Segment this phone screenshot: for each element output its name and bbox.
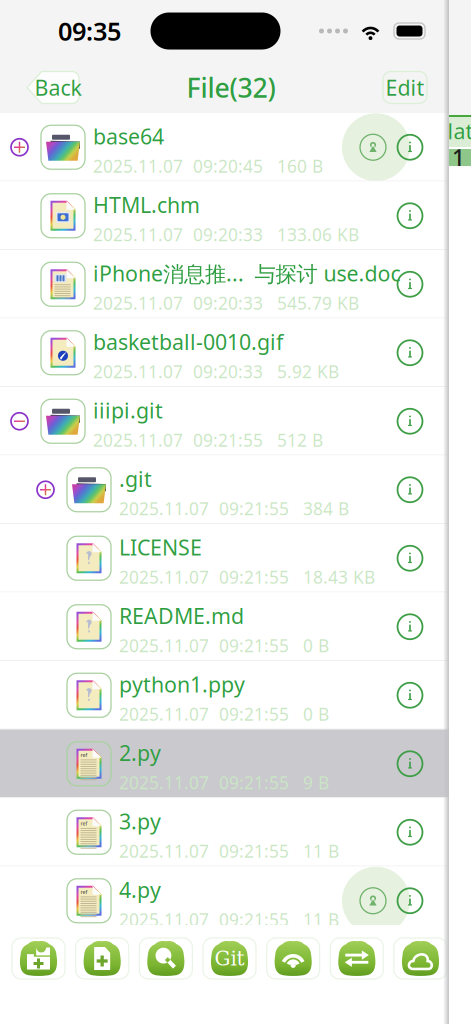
button[interactable]: Info (388, 254, 432, 314)
staticText: basketball-0010.gif (93, 328, 283, 356)
staticText: ref (80, 888, 87, 895)
staticText: 11 B (303, 839, 339, 862)
staticText: 2025.11.07 (93, 154, 183, 177)
button[interactable]: Info (388, 734, 432, 794)
staticText: 2025.11.07 (93, 223, 183, 246)
staticText: 2025.11.07 (93, 360, 183, 383)
staticText: python1.ppy (119, 670, 245, 698)
button[interactable]: Info (388, 528, 432, 588)
staticText: 09:20:45 (193, 154, 263, 177)
button[interactable]: .git (0, 455, 449, 524)
staticText: README.md (119, 602, 244, 630)
button[interactable]: Info (388, 665, 432, 725)
staticText: 160 B (277, 154, 323, 177)
staticText: .git (119, 465, 152, 493)
staticText: ref (80, 751, 87, 758)
button[interactable]: Info (388, 871, 432, 931)
staticText: File(32) (186, 70, 275, 105)
button[interactable]: Info (388, 597, 432, 657)
button[interactable]: README.md (0, 592, 449, 661)
button[interactable]: ref (0, 866, 449, 935)
button[interactable]: Git (203, 938, 256, 979)
button[interactable]: Transfer (330, 938, 383, 979)
staticText: Back (34, 73, 81, 102)
staticText: iiipi.git (93, 396, 163, 424)
staticText: HTML.chm (93, 191, 200, 219)
staticText: 1 (452, 142, 465, 172)
staticText: 09:21:55 (219, 908, 289, 931)
staticText: 2025.11.07 (119, 839, 209, 862)
button[interactable]: New Folder (12, 938, 65, 979)
staticText: 11 B (303, 908, 339, 931)
button[interactable]: ref (0, 798, 449, 866)
button[interactable]: Info (388, 391, 432, 451)
staticText: 9 B (303, 771, 329, 794)
button[interactable]: LICENSE (0, 524, 449, 592)
staticText: plate (434, 117, 471, 145)
button[interactable]: Search (139, 938, 192, 979)
button[interactable]: Info (388, 186, 432, 246)
staticText: ref (80, 820, 87, 827)
staticText: 2025.11.07 (119, 908, 209, 931)
staticText: LICENSE (119, 533, 202, 561)
staticText: 545.79 KB (277, 291, 359, 314)
staticText: 09:20:33 (193, 223, 263, 246)
staticText: 2025.11.07 (119, 702, 209, 725)
staticText: 18.43 KB (303, 565, 375, 588)
staticText: 5.92 KB (277, 360, 339, 383)
staticText: 09:21:55 (219, 634, 289, 657)
staticText: iPhone消息推送机制的实现与探讨 use.doc (93, 259, 400, 287)
staticText: 384 B (303, 497, 349, 520)
button[interactable]: basketball-0010.gif (0, 318, 449, 387)
staticText: 2025.11.07 (93, 428, 183, 451)
staticText: base64 (93, 122, 164, 150)
staticText: 2025.11.07 (119, 565, 209, 588)
button[interactable]: Info (388, 460, 432, 520)
button[interactable]: Back (27, 65, 79, 109)
staticText: 09:21:55 (219, 497, 289, 520)
button[interactable]: Connect (267, 938, 320, 979)
staticText: 133.06 KB (277, 223, 359, 246)
staticText: 4.py (119, 876, 161, 904)
staticText: 2025.11.07 (119, 497, 209, 520)
staticText: 2.py (119, 739, 161, 767)
button[interactable]: python1.ppy (0, 661, 449, 729)
staticText: 09:21:55 (219, 771, 289, 794)
button[interactable]: Cloud (394, 938, 447, 979)
staticText: 3.py (119, 807, 161, 835)
staticText: 09:21:55 (219, 702, 289, 725)
staticText: 09:35 (58, 14, 121, 48)
staticText: Git (214, 947, 244, 970)
button[interactable]: Info (388, 323, 432, 383)
staticText: 0 B (303, 634, 329, 657)
button[interactable]: ref (0, 729, 449, 798)
staticText: 09:20:33 (193, 360, 263, 383)
button[interactable]: Info (388, 117, 432, 177)
staticText: 2025.11.07 (119, 771, 209, 794)
button[interactable]: Info (388, 802, 432, 862)
staticText: 2025.11.07 (93, 291, 183, 314)
button[interactable]: base64 (0, 113, 449, 181)
staticText: 09:20:33 (193, 291, 263, 314)
button[interactable]: iiipi.git (0, 387, 449, 455)
staticText: 2025.11.07 (119, 634, 209, 657)
staticText: 0 B (303, 702, 329, 725)
staticText: 09:21:55 (193, 428, 263, 451)
button[interactable]: HTML.chm (0, 181, 449, 250)
button[interactable]: iPhone消息推送机制的实现与探讨 use.doc (0, 250, 449, 318)
button[interactable]: Edit (383, 65, 427, 109)
button[interactable]: New File (76, 938, 129, 979)
staticText: 09:21:55 (219, 565, 289, 588)
staticText: 512 B (277, 428, 323, 451)
staticText: 09:21:55 (219, 839, 289, 862)
staticText: Edit (385, 73, 424, 102)
